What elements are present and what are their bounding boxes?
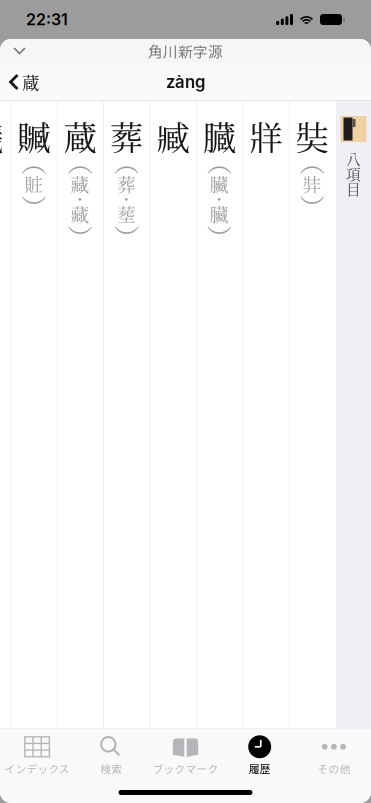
button[interactable]: 牂 (242, 101, 289, 728)
button[interactable]: 検索 (74, 730, 148, 776)
staticText: ︶ (68, 218, 93, 254)
staticText: ︶ (21, 188, 46, 224)
staticText: ︶ (207, 218, 232, 254)
staticText: zàng (166, 72, 205, 92)
staticText: ︵ (114, 143, 139, 179)
button[interactable]: Dismiss (0, 38, 39, 64)
staticText: 贓 (17, 112, 50, 160)
staticText: 藏 (71, 170, 90, 197)
staticText: 項 (346, 163, 361, 184)
staticText: 臓 (203, 112, 236, 160)
staticText: ︵ (68, 143, 93, 179)
button[interactable]: インデックス (0, 730, 74, 776)
button[interactable]: 蔵 (0, 63, 47, 101)
staticText: 犧 (0, 112, 3, 160)
staticText: インデックス (5, 761, 70, 776)
staticText: 履歴 (249, 761, 271, 776)
button[interactable]: 葬 (103, 101, 150, 728)
button[interactable]: 贓 (10, 101, 57, 728)
staticText: 八 (346, 148, 361, 169)
staticText: 葬 (110, 112, 143, 160)
staticText: 弉 (303, 170, 322, 197)
staticText: 賍 (24, 170, 43, 197)
staticText: 塟 (117, 200, 136, 227)
staticText: 葬 (117, 170, 136, 197)
staticText: ブックマーク (152, 761, 218, 776)
button[interactable]: ブックマーク (148, 730, 223, 776)
staticText: ・ (73, 188, 88, 209)
button[interactable]: 臧 (150, 101, 196, 728)
button[interactable]: 臓 (196, 101, 242, 728)
staticText: 蔵 (22, 69, 39, 94)
staticText: 検索 (100, 761, 122, 776)
button[interactable]: 奘 (289, 101, 335, 728)
staticText: 22:31 (26, 10, 68, 29)
staticText: 臟 (210, 200, 229, 227)
staticText: 臧 (156, 112, 189, 160)
staticText: 臟 (210, 170, 229, 197)
staticText: ︵ (207, 143, 232, 179)
button[interactable]: 履歴 (223, 730, 297, 776)
staticText: その他 (317, 761, 350, 776)
staticText: ︵ (21, 143, 46, 179)
staticText: 蔵 (64, 112, 97, 160)
staticText: 目 (346, 178, 361, 199)
button[interactable]: 蔵 (57, 101, 103, 728)
staticText: ・ (212, 188, 227, 209)
staticText: 牂 (249, 112, 282, 160)
button[interactable]: その他 (297, 730, 371, 776)
staticText: ︶ (300, 188, 325, 224)
staticText: ︵ (300, 143, 325, 179)
staticText: 奘 (296, 112, 329, 160)
staticText: ︶ (114, 218, 139, 254)
staticText: 藏 (71, 200, 90, 227)
staticText: ・ (119, 188, 134, 209)
staticText: 角川新字源 (148, 40, 223, 62)
